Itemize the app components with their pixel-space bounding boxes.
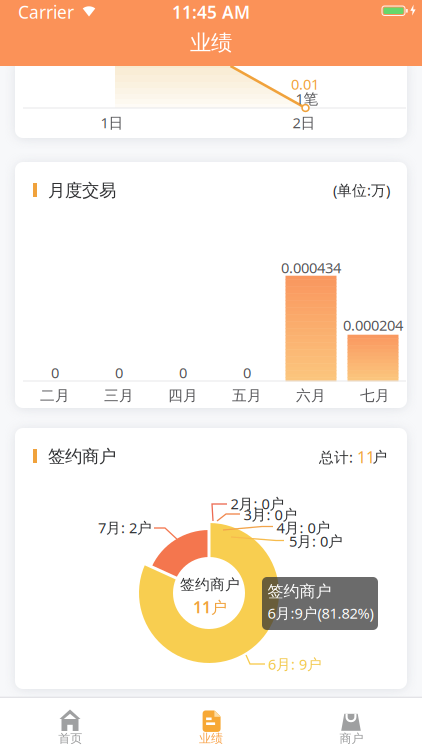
staticText: 二月 — [40, 386, 70, 404]
staticText: 业绩 — [190, 30, 232, 56]
staticText: 签约商户 — [267, 582, 331, 601]
staticText: 户 — [372, 448, 387, 466]
staticText: 月度交易 — [48, 180, 116, 201]
staticText: 0.01 — [291, 74, 319, 94]
staticText: 首页 — [58, 731, 82, 746]
staticText: 3月: 0户 — [243, 505, 297, 524]
staticText: 5月: 0户 — [289, 531, 343, 551]
staticText: 4月: 0户 — [276, 518, 330, 537]
staticText: 0 — [115, 363, 123, 382]
staticText: 11户 — [193, 596, 227, 618]
staticText: 11:45 AM — [172, 0, 250, 23]
staticText: (单位:万) — [333, 180, 390, 200]
staticText: 0.000434 — [281, 258, 341, 277]
button[interactable]: 首页 — [0, 697, 141, 750]
staticText: 1笔 — [295, 89, 318, 108]
staticText: 6月:9户(81.82%) — [267, 603, 373, 623]
staticText: 签约商户 — [48, 446, 116, 467]
staticText: Carrier — [18, 0, 74, 23]
staticText: 七月 — [360, 386, 390, 404]
staticText: 0 — [51, 363, 59, 382]
staticText: 五月 — [232, 386, 262, 404]
staticText: 1日 — [100, 113, 123, 132]
button[interactable]: 商户 — [281, 697, 422, 750]
staticText: 三月 — [104, 386, 134, 404]
staticText: 签约商户 — [180, 575, 240, 593]
staticText: 0.000204 — [343, 315, 403, 335]
staticText: 0 — [179, 363, 187, 382]
staticText: 2月: 0户 — [230, 494, 284, 513]
staticText: 11 — [357, 446, 375, 468]
staticText: 6月: 9户 — [268, 654, 322, 674]
staticText: 2日 — [292, 113, 315, 132]
button[interactable]: 业绩 — [141, 697, 281, 750]
staticText: 7月: 2户 — [98, 518, 152, 537]
staticText: 业绩 — [199, 731, 223, 746]
staticText: 四月 — [168, 386, 198, 404]
staticText: 六月 — [296, 386, 326, 404]
staticText: 总计: — [319, 447, 353, 467]
staticText: 0 — [243, 363, 251, 382]
staticText: 商户 — [340, 731, 364, 746]
